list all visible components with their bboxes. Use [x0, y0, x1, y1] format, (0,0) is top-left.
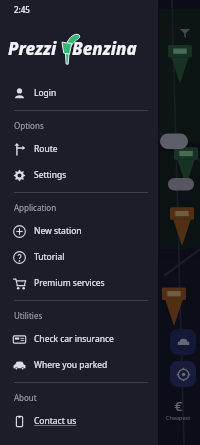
- staticText: Settings: [34, 169, 67, 181]
- staticText: Tutorial: [34, 251, 65, 263]
- staticText: 2:45: [14, 4, 30, 15]
- button[interactable]: Premium services: [0, 270, 158, 296]
- staticText: Utilities: [14, 310, 43, 321]
- staticText: Where you parked: [34, 359, 108, 371]
- staticText: Contact us: [34, 415, 77, 427]
- staticText: Check car insurance: [34, 333, 114, 345]
- staticText: Options: [14, 120, 44, 131]
- staticText: Premium services: [34, 277, 105, 289]
- staticText: Login: [34, 87, 57, 99]
- button[interactable]: Parked car: [170, 329, 196, 355]
- staticText: Application: [14, 202, 57, 213]
- button[interactable]: Where you parked: [0, 352, 158, 378]
- button[interactable]: Contact us: [0, 408, 158, 434]
- button[interactable]: New station: [0, 218, 158, 244]
- staticText: About: [14, 392, 37, 403]
- button[interactable]: Tutorial: [0, 244, 158, 270]
- staticText: New station: [34, 225, 82, 237]
- staticText: Benzina: [72, 37, 137, 60]
- staticText: Prezzi: [8, 37, 57, 60]
- staticText: Cheapest: [166, 414, 191, 421]
- staticText: €: [175, 398, 182, 414]
- staticText: Route: [34, 143, 58, 155]
- button[interactable]: Login: [0, 80, 158, 106]
- button[interactable]: Check car insurance: [0, 326, 158, 352]
- button[interactable]: Route: [0, 136, 158, 162]
- button[interactable]: My location: [170, 361, 196, 387]
- button[interactable]: Settings: [0, 162, 158, 188]
- button[interactable]: Filter: [174, 22, 196, 44]
